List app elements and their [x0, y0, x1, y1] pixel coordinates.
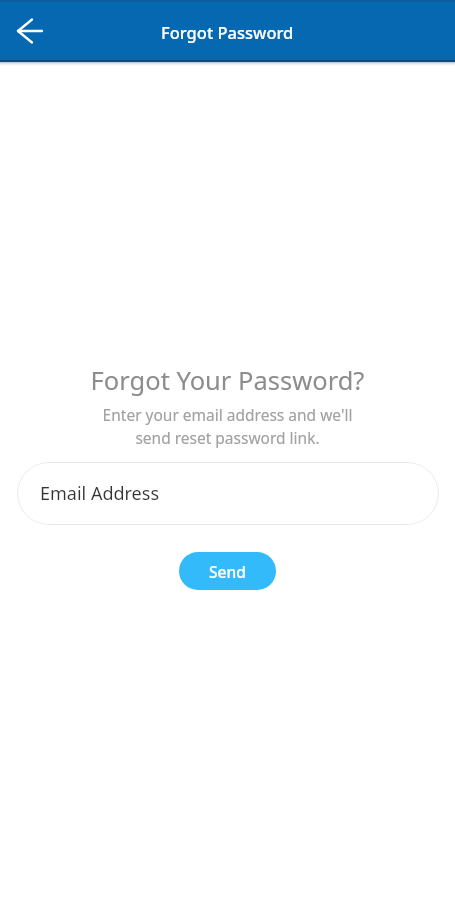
button[interactable]: Send: [179, 552, 276, 590]
staticText: Forgot Password: [161, 21, 294, 43]
staticText: Email Address: [40, 481, 160, 506]
staticText: Send: [209, 561, 246, 582]
staticText: Forgot Your Password?: [0, 363, 455, 398]
button[interactable]: Email Address: [17, 462, 439, 525]
staticText: Enter your email address and we'll send …: [0, 404, 455, 449]
button[interactable]: Back: [6, 7, 52, 53]
